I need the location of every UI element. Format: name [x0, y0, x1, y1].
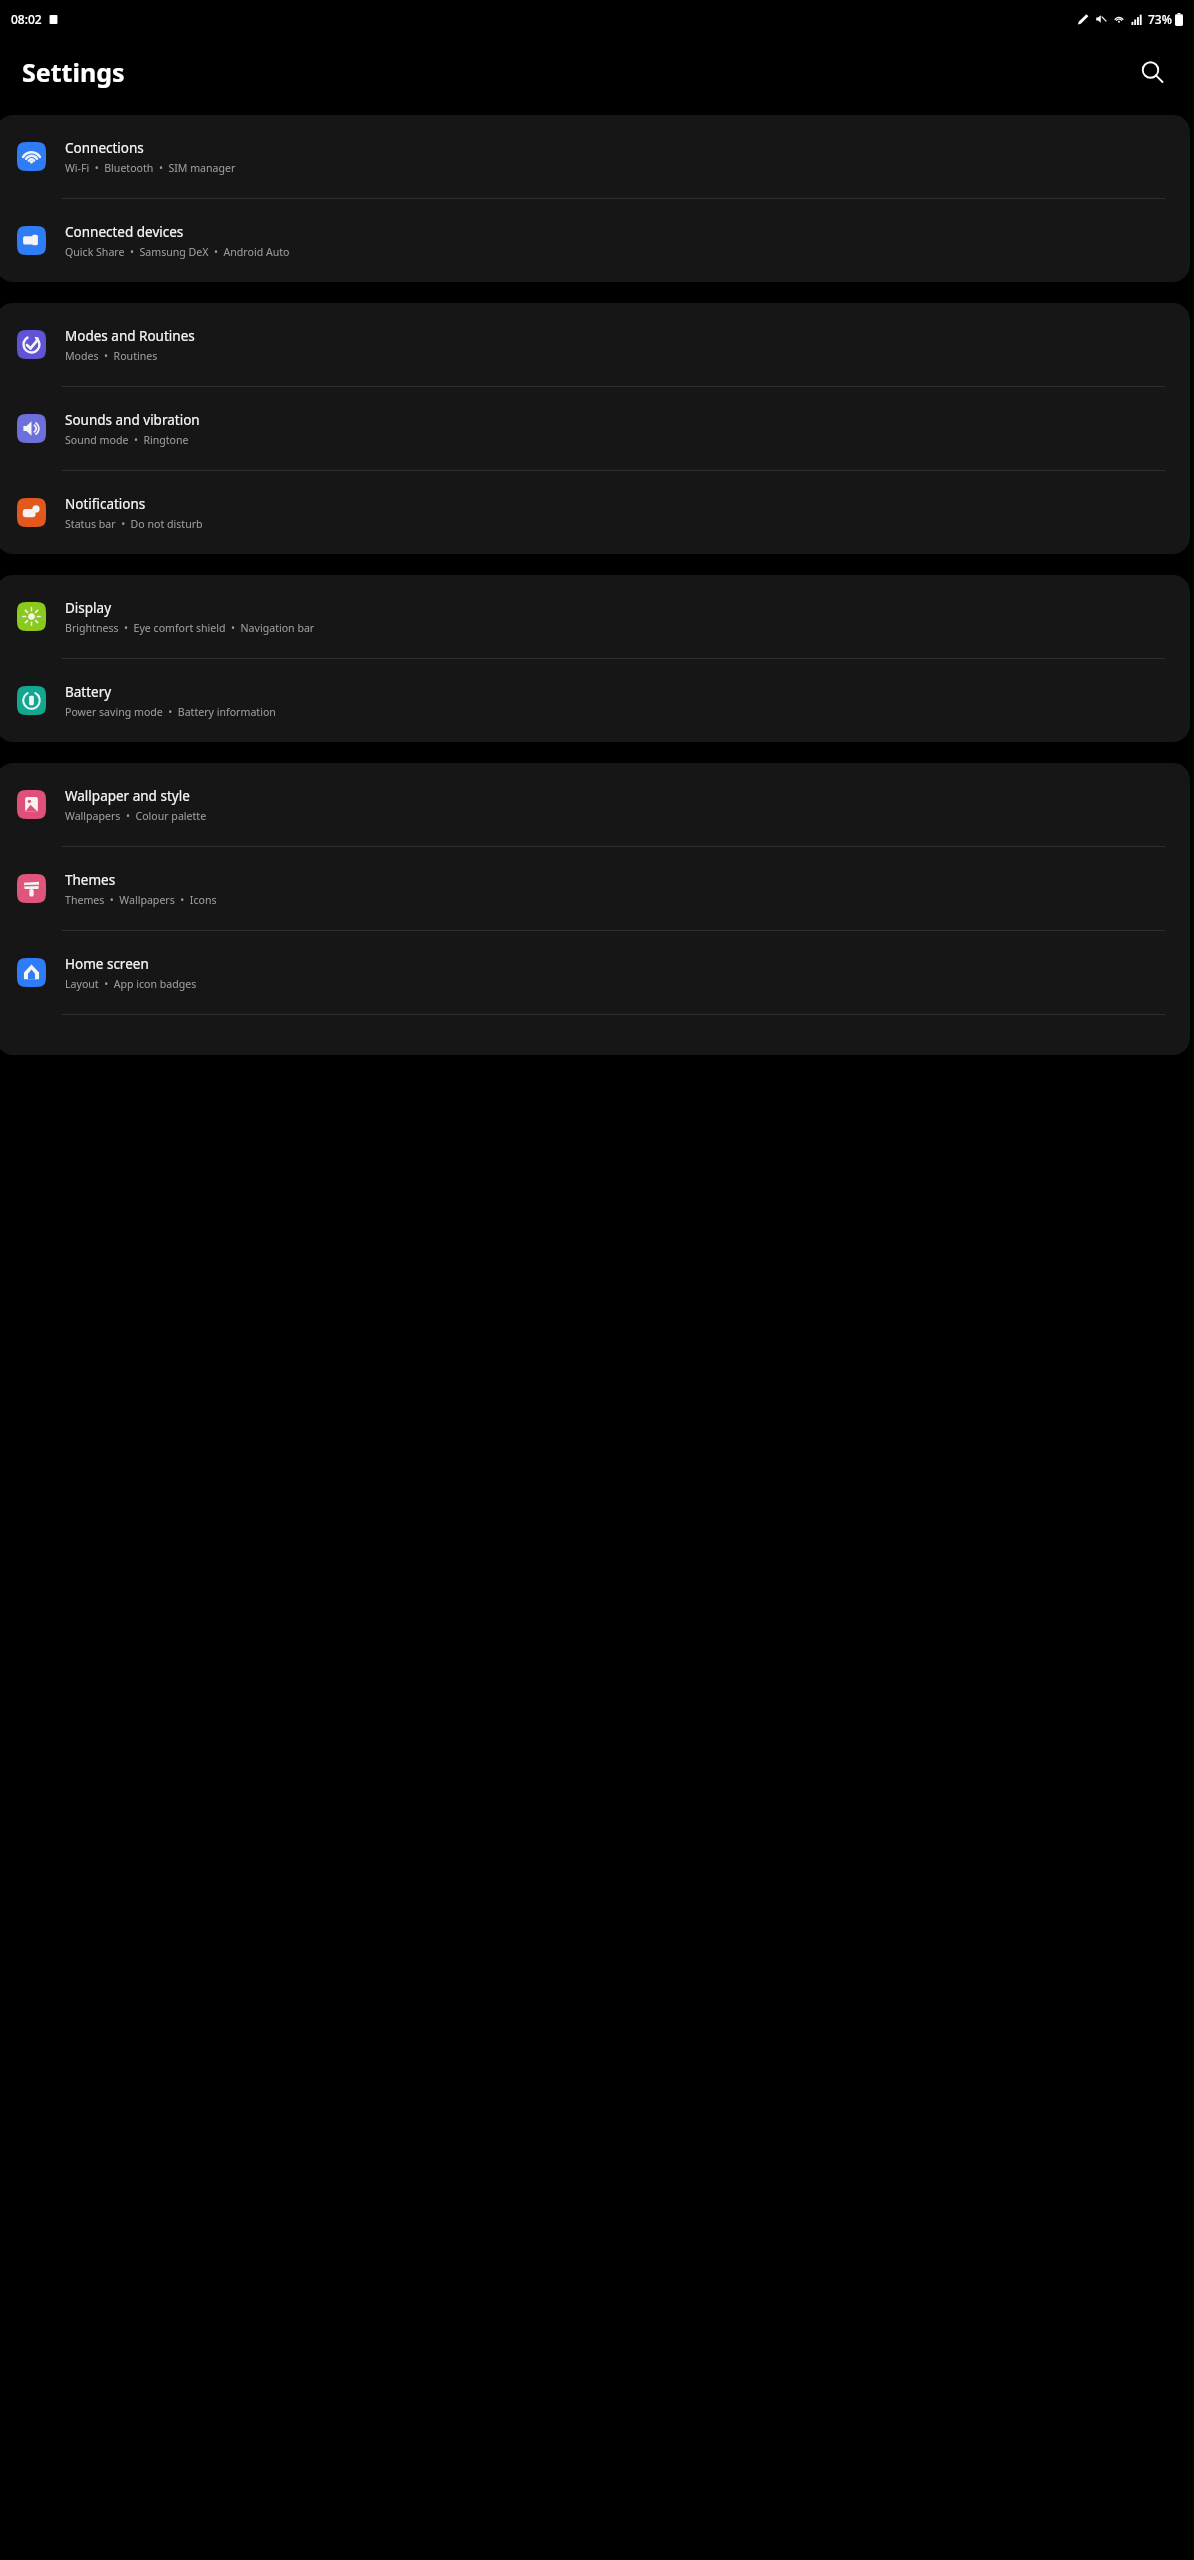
staticText: Sound mode • Ringtone — [65, 433, 189, 447]
staticText: Sounds and vibration — [65, 411, 200, 429]
staticText: Power saving mode • Battery information — [65, 705, 276, 719]
staticText: Themes — [65, 871, 116, 889]
button[interactable]: Search — [1132, 52, 1172, 92]
button[interactable]: Wallpaper and style — [0, 763, 1190, 846]
button[interactable]: Sounds and vibration — [0, 387, 1190, 470]
staticText: Battery — [65, 683, 112, 701]
button[interactable]: Connected devices — [0, 199, 1190, 282]
staticText: Themes • Wallpapers • Icons — [65, 893, 217, 907]
staticText: Wallpapers • Colour palette — [65, 809, 207, 823]
staticText: Wi-Fi • Bluetooth • SIM manager — [65, 161, 236, 175]
staticText: Modes and Routines — [65, 327, 195, 345]
staticText: Quick Share • Samsung DeX • Android Auto — [65, 245, 290, 259]
button[interactable]: Modes and Routines — [0, 303, 1190, 386]
staticText: Notifications — [65, 495, 146, 513]
staticText: Display — [65, 599, 112, 617]
button[interactable]: Connections — [0, 115, 1190, 198]
staticText: 73% — [1148, 11, 1172, 27]
button[interactable]: Home screen — [0, 931, 1190, 1014]
staticText: Wallpaper and style — [65, 787, 190, 805]
staticText: Home screen — [65, 955, 149, 973]
button[interactable]: Notifications — [0, 471, 1190, 554]
staticText: Layout • App icon badges — [65, 977, 197, 991]
staticText: Brightness • Eye comfort shield • Naviga… — [65, 621, 315, 635]
staticText: Modes • Routines — [65, 349, 158, 363]
staticText: Settings — [22, 55, 125, 89]
button[interactable]: Battery — [0, 659, 1190, 742]
staticText: Connected devices — [65, 223, 184, 241]
staticText: Connections — [65, 139, 144, 157]
staticText: Status bar • Do not disturb — [65, 517, 203, 531]
button[interactable]: Themes — [0, 847, 1190, 930]
button[interactable]: Display — [0, 575, 1190, 658]
staticText: 08:02 — [11, 11, 42, 27]
